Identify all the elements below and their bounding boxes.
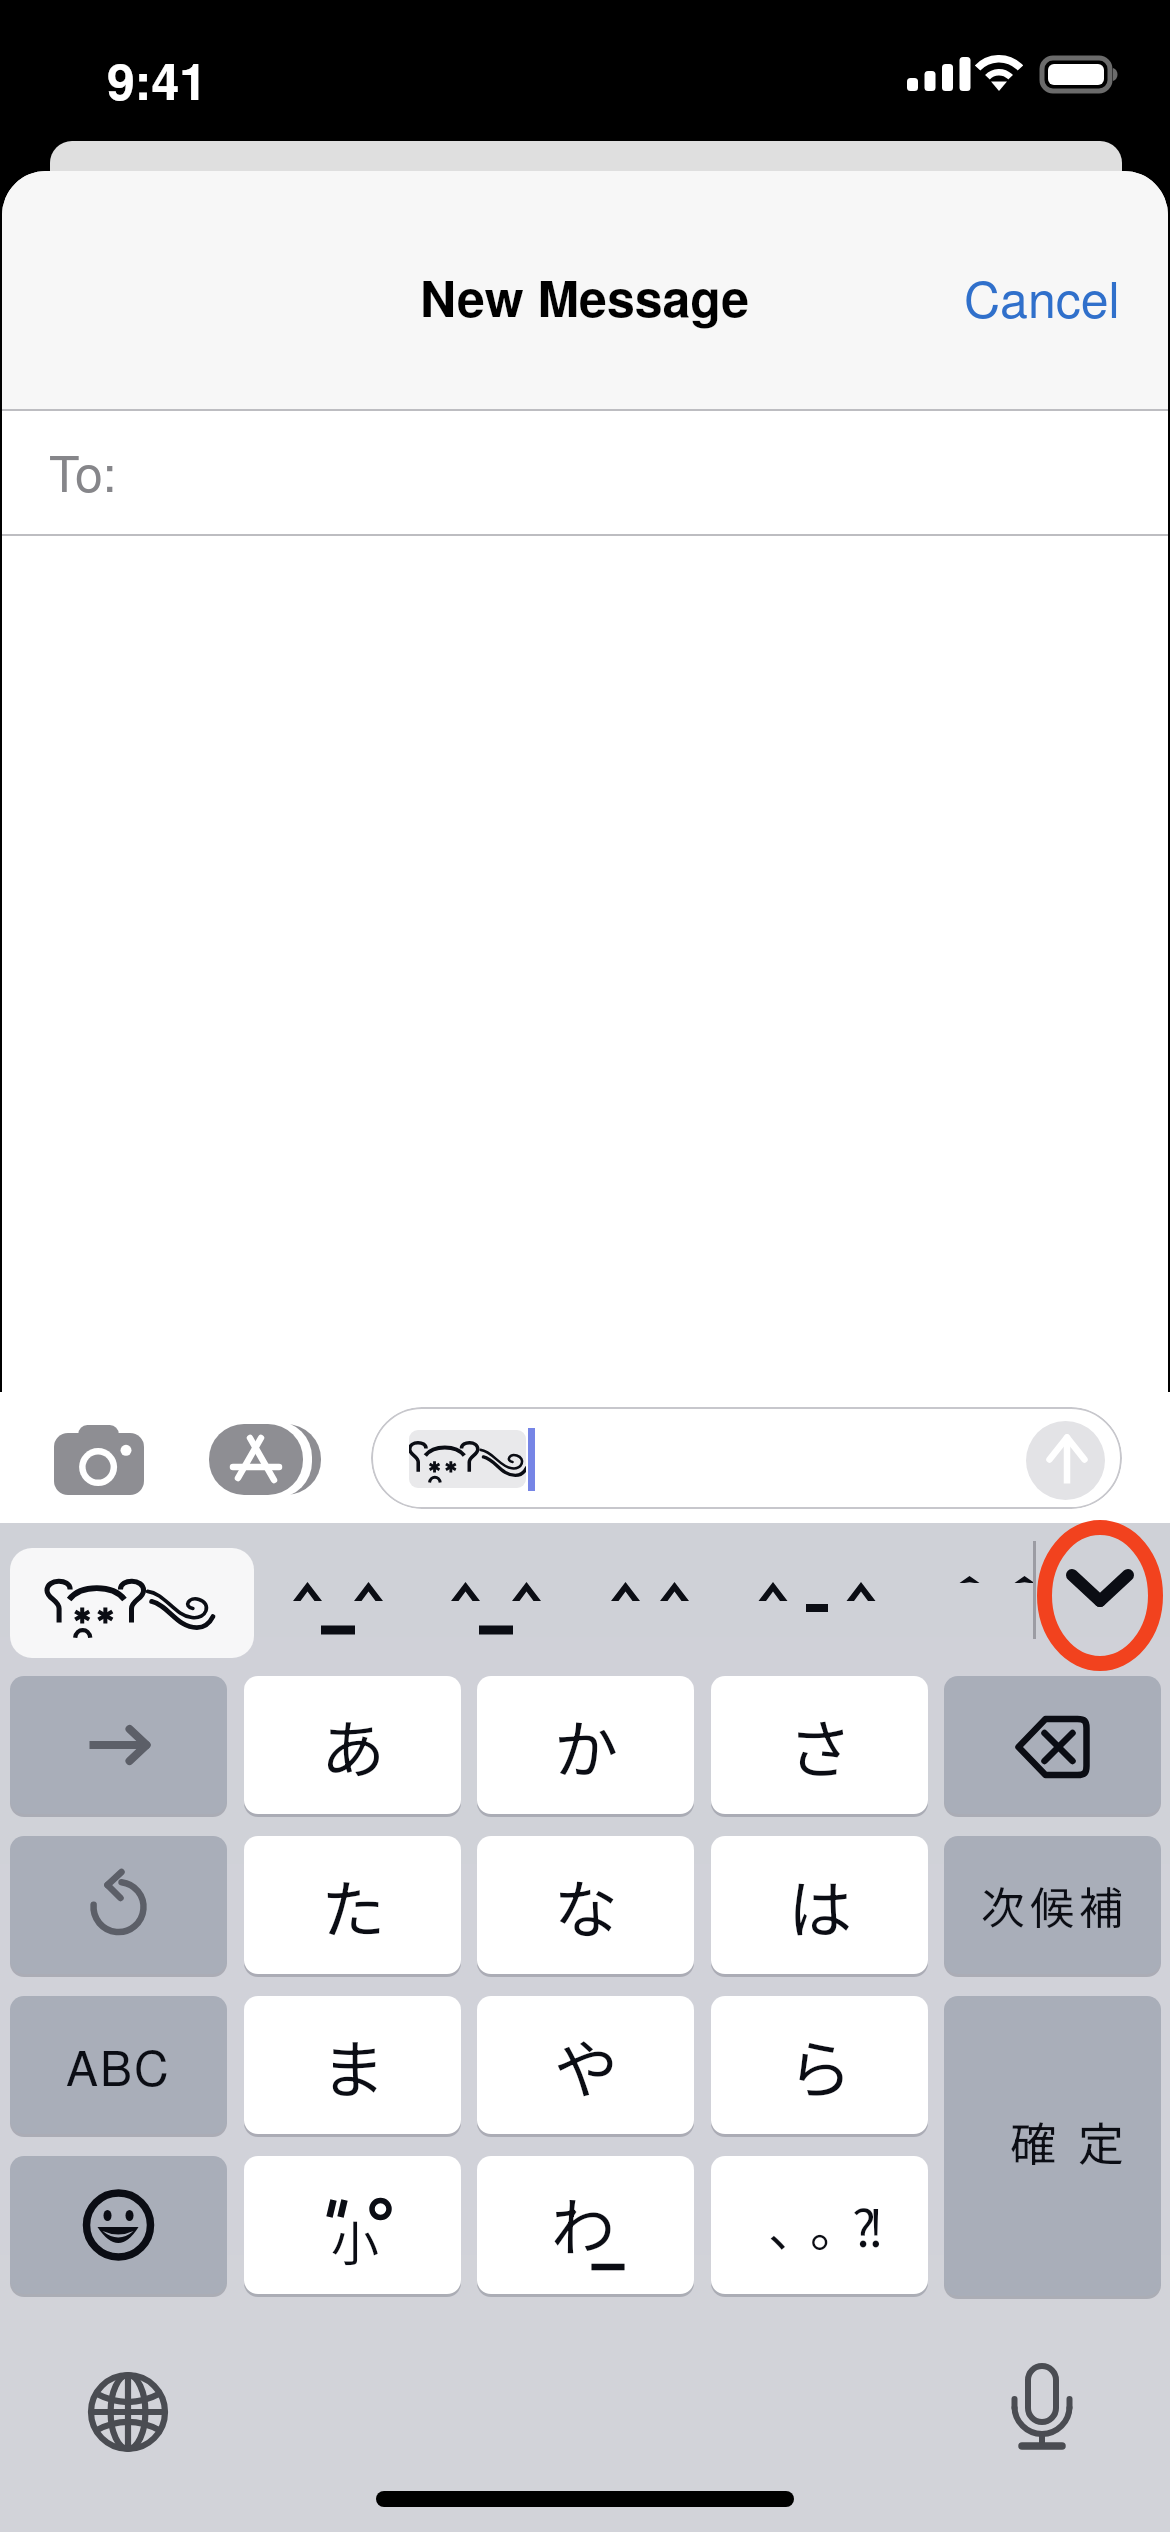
button[interactable]: Delete	[944, 1676, 1161, 1814]
button[interactable]: Dictation	[992, 2362, 1092, 2462]
button[interactable]: Emoticon suggestion	[263, 1545, 413, 1657]
staticText: 9:41	[107, 44, 208, 116]
button[interactable]	[10, 1548, 254, 1658]
button[interactable]: さ	[711, 1676, 928, 1814]
staticText: New Message	[420, 261, 750, 333]
staticText: や	[554, 2019, 618, 2112]
button[interactable]: Emoticon suggestion	[421, 1545, 571, 1657]
staticText: 確定	[999, 2108, 1135, 2175]
button[interactable]: Apps	[209, 1424, 321, 1495]
staticText: ら	[788, 2019, 852, 2112]
staticText: Cancel	[964, 261, 1120, 333]
button[interactable]: や	[477, 1996, 694, 2134]
button[interactable]: To:	[2, 411, 1168, 534]
button[interactable]: Cancel	[934, 247, 1168, 347]
staticText: さ	[788, 1699, 852, 1792]
button[interactable]: た	[244, 1836, 461, 1974]
button[interactable]: ま	[244, 1996, 461, 2134]
button[interactable]: あ	[244, 1676, 461, 1814]
button[interactable]: Emoticon suggestion	[742, 1545, 892, 1657]
button[interactable]: ら	[711, 1996, 928, 2134]
staticText: 次候補	[981, 1873, 1128, 1937]
button[interactable]: な	[477, 1836, 694, 1974]
staticText: は	[788, 1859, 852, 1952]
button[interactable]: Collapse suggestions	[1046, 1542, 1154, 1658]
button[interactable]: Next	[10, 1676, 227, 1814]
button[interactable]: Emoticon suggestion	[575, 1545, 725, 1657]
staticText: か	[554, 1699, 618, 1792]
button[interactable]: 、。?!	[711, 2156, 928, 2294]
button[interactable]: 確定	[944, 1996, 1161, 2296]
button[interactable]: Change keyboard	[78, 2362, 178, 2462]
button[interactable]: Undo	[10, 1836, 227, 1974]
staticText: ABC	[66, 2031, 171, 2100]
button[interactable]: か	[477, 1676, 694, 1814]
button[interactable]: Emoji	[10, 2156, 227, 2294]
button[interactable]: ABC	[10, 1996, 227, 2134]
staticText: な	[554, 1859, 618, 1952]
button[interactable]: Send	[371, 1407, 1122, 1509]
button[interactable]: 次候補	[944, 1836, 1161, 1974]
button[interactable]: 小	[244, 2156, 461, 2294]
staticText: わ	[551, 2177, 615, 2270]
staticText: あ	[321, 1699, 385, 1792]
button[interactable]: Camera	[54, 1425, 144, 1495]
button[interactable]: わ	[477, 2156, 694, 2294]
button[interactable]: は	[711, 1836, 928, 1974]
staticText: 、。?!	[768, 2189, 876, 2261]
staticText: た	[321, 1859, 385, 1952]
staticText: To:	[49, 435, 117, 507]
button[interactable]: Send	[1026, 1421, 1105, 1500]
button[interactable]: Emoticon suggestion	[922, 1545, 1072, 1657]
staticText: ま	[321, 2019, 385, 2112]
staticText: 小	[331, 2205, 380, 2275]
